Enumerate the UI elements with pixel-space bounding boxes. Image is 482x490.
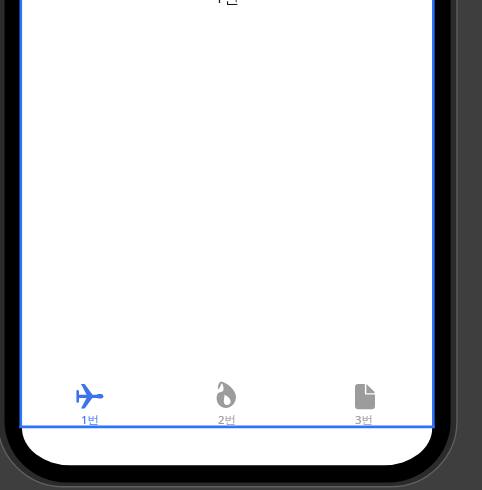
staticText: 3번 [334,412,394,428]
staticText: 1번 [197,0,257,476]
button[interactable] [296,378,432,428]
staticText: 1번 [60,412,120,428]
button[interactable] [159,378,295,428]
staticText: 2번 [197,412,257,428]
button[interactable] [22,378,158,428]
